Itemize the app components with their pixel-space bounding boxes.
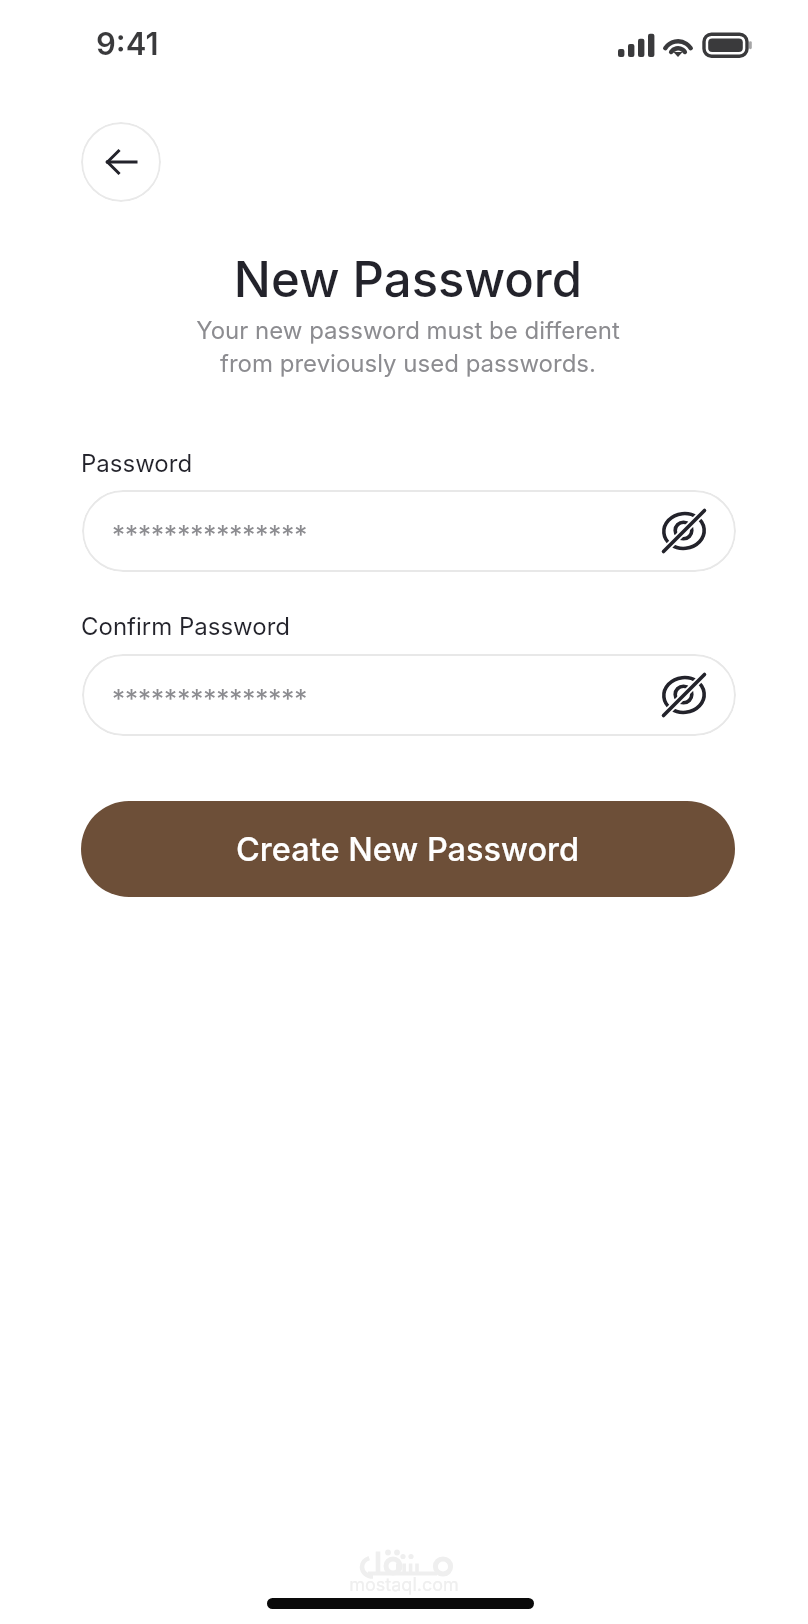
staticText: *************** <box>112 683 308 714</box>
staticText: New Password <box>4 250 808 309</box>
button[interactable]: Create New Password <box>81 801 735 897</box>
staticText: *************** <box>112 519 308 550</box>
other: Battery <box>703 30 753 58</box>
button[interactable]: *************** <box>82 654 736 736</box>
staticText: 9:41 <box>96 25 159 63</box>
staticText: Your new password must be different from… <box>4 316 808 377</box>
other: Wi-Fi <box>662 30 695 58</box>
staticText: Create New Password <box>236 830 580 869</box>
button[interactable]: *************** <box>82 490 736 572</box>
other: Cellular signal <box>618 30 656 58</box>
button[interactable]: Back <box>81 122 161 202</box>
button[interactable]: Toggle password visibility <box>656 503 712 559</box>
button[interactable]: Toggle password visibility <box>656 667 712 723</box>
staticText: Password <box>81 449 193 478</box>
staticText: Confirm Password <box>81 612 291 641</box>
